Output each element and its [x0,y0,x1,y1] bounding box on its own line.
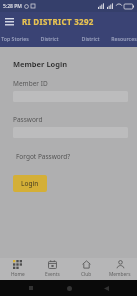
button[interactable]: Home [0,258,35,280]
staticText: Login [21,179,39,188]
staticText: District Committee [70,35,111,42]
staticText: Forgot Password? [16,152,71,161]
button[interactable]: Top Stories [0,30,29,47]
staticText: 5:28 PM [3,3,22,10]
button[interactable]: Club [69,258,103,280]
button[interactable]: Home [62,281,76,295]
button[interactable]: Resources [111,30,137,47]
button[interactable]: Recent apps [24,281,38,295]
staticText: Home [11,271,25,278]
button[interactable]: Back [99,281,113,295]
staticText: Password [13,115,43,124]
button[interactable]: Events [35,258,69,280]
button[interactable]: Login [13,175,47,192]
button[interactable]: Forgot Password? [13,151,74,162]
button[interactable]: District Committee [70,30,111,47]
button[interactable]: Open navigation menu [0,12,18,30]
staticText: Member Login [13,59,68,69]
staticText: Member ID [13,79,48,88]
staticText: Top Stories [1,35,29,42]
button[interactable]: District Governors [29,30,70,47]
staticText: District Governors [29,35,70,42]
staticText: Events [45,271,60,278]
staticText: Club [81,271,92,278]
button[interactable]: Members [103,258,137,280]
staticText: RI DISTRICT 3292 [22,16,94,27]
staticText: Members [109,271,131,278]
staticText: Resources [111,35,137,42]
